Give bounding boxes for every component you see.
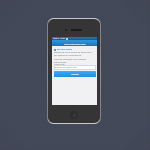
staticText: 17:35 xyxy=(60,37,65,40)
staticText: Merci de compléter votre adresse électro… xyxy=(54,58,87,64)
staticText: Valider xyxy=(71,73,79,76)
staticText: DÉCLARATION DES xyxy=(64,42,86,45)
staticText: Adresse mail xyxy=(54,63,65,65)
staticText: prenom.nom@xxx.com xyxy=(55,66,77,69)
staticText: INSTRUCTIONS xyxy=(57,48,73,51)
button[interactable]: Home xyxy=(70,111,78,119)
staticText: Sosh F xyxy=(53,37,59,40)
button[interactable]: Menu xyxy=(53,42,57,45)
button[interactable]: Valider xyxy=(54,71,96,77)
staticText: Bienvenue sur le service de déclaration … xyxy=(54,51,92,57)
button[interactable]: prenom.nom@xxx.com xyxy=(54,65,96,70)
